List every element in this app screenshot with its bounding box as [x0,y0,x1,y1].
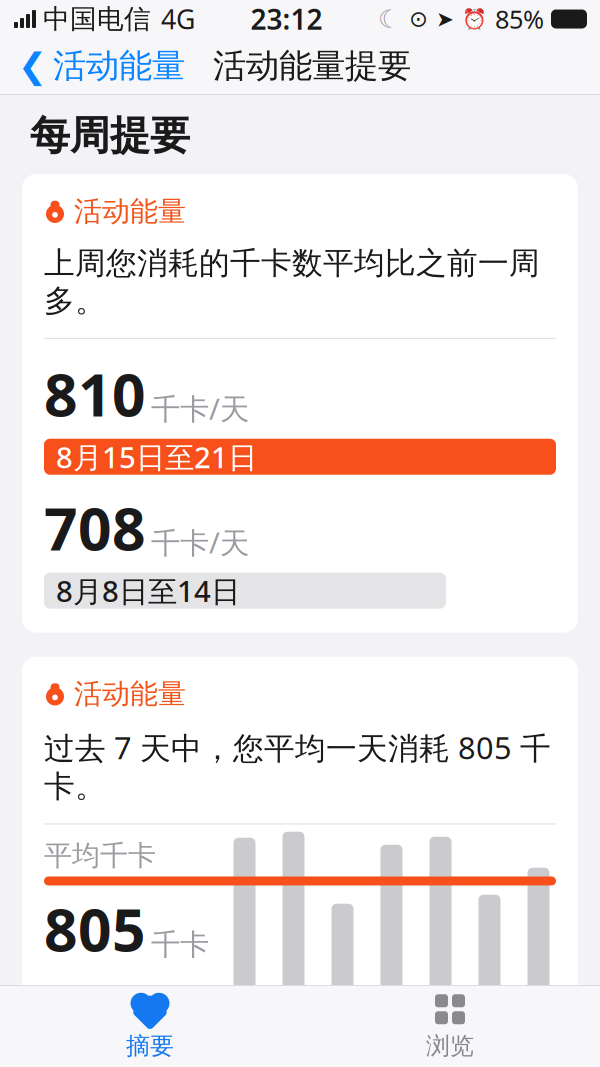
staticText: 805 [44,890,146,968]
button[interactable]: 浏览 [300,984,600,1067]
staticText: 摘要 [126,1031,174,1061]
button[interactable]: ❮ [8,39,195,92]
staticText: 活动能量 [53,45,185,86]
staticText: 8月15日至21日 [56,437,257,476]
staticText: 平均千卡 [44,838,156,873]
staticText: 85% [495,2,544,36]
staticText: 过去 7 天中，您平均一天消耗 805 千卡。 [44,727,551,805]
staticText: 708 [44,489,146,567]
staticText: ☾ [378,5,401,33]
button[interactable]: 8月15日至21日 [44,439,556,475]
staticText: 千卡 [151,927,209,963]
staticText: 8月8日至14日 [56,571,240,610]
staticText: ❮ [18,46,47,86]
staticText: 23:12 [250,0,322,38]
staticText: 浏览 [426,1031,474,1061]
staticText: 上周您消耗的千卡数平均比之前一周多。 [44,244,540,320]
staticText: 千卡/天 [151,389,249,428]
staticText: 中国电信 [43,3,151,35]
staticText: ➤ [436,7,454,31]
staticText: 每周提要 [30,111,190,160]
staticText: 4G [161,1,195,37]
staticText: 千卡/天 [151,523,249,562]
staticText: 活动能量 [74,677,186,711]
staticText: 活动能量提要 [213,45,411,86]
staticText: ⊙ [409,6,428,32]
button[interactable]: 摘要 [0,984,300,1067]
staticText: 810 [44,355,146,433]
staticText: 活动能量 [74,194,186,228]
staticText: ⏰ [462,8,487,30]
button[interactable]: 8月8日至14日 [44,573,446,609]
